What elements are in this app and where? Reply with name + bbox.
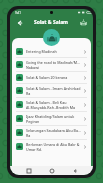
staticText: Solat & Salam - Beli Kau: [26, 100, 67, 105]
staticText: Nabawi: [26, 65, 39, 70]
button[interactable]: Home: [47, 166, 56, 175]
button[interactable]: Back: [70, 166, 79, 175]
button[interactable]: Entering Madinah: [12, 46, 91, 57]
staticText: Entering Madinah: [26, 49, 57, 54]
button[interactable]: Back: [14, 17, 25, 28]
button[interactable]: Mosque: [78, 17, 89, 28]
staticText: Selarungan Saudabara Abu Bakr: [26, 128, 81, 133]
button[interactable]: Recent apps: [24, 166, 33, 175]
button[interactable]: Going the road to Madinah/Masjid: [12, 58, 91, 71]
staticText: Ijazz Khatiding/Salam untuk: [26, 114, 75, 119]
button[interactable]: Selarungan Saudabara Abu Bakr: [12, 126, 91, 139]
staticText: Umar Rd.: [26, 147, 43, 152]
button[interactable]: Solat & Salam - Beli Kau: [12, 98, 91, 111]
staticText: Going the road to Madinah/Masjid: [26, 60, 81, 65]
staticText: 9:41: [15, 11, 21, 15]
staticText: Al-Musyabb-Rah.-Brodith Ma: [26, 105, 76, 110]
button[interactable]: Solat & Salam 20 kerana: [12, 72, 91, 83]
button[interactable]: Solat & Salam - Imam Arshirbad: [12, 84, 91, 97]
staticText: Solat & Salam: [34, 19, 68, 26]
staticText: Solat & Salam - Imam Arshirbad: [26, 86, 81, 91]
button[interactable]: Ijazz Khatiding/Salam untuk: [12, 112, 91, 125]
button[interactable]: Berkenan Umara di Abu Bakr &: [12, 140, 91, 153]
staticText: Ra: [26, 133, 31, 138]
staticText: Solat & Salam 20 kerana: [26, 75, 68, 80]
staticText: Ra: [26, 91, 31, 96]
staticText: Berkenan Umara di Abu Bakr &: [26, 142, 80, 147]
staticText: Pegiran: [26, 119, 40, 124]
